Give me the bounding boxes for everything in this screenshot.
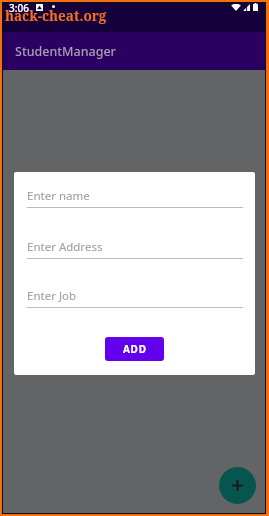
staticText: ADD — [123, 342, 147, 356]
staticText: hack-cheat.org — [5, 7, 107, 25]
staticText: Enter name — [27, 188, 90, 204]
staticText: Enter Job — [27, 288, 77, 304]
button[interactable]: ADD — [105, 337, 164, 361]
button[interactable]: Add student — [219, 467, 256, 504]
staticText: 3:06 — [9, 1, 29, 15]
staticText: Enter Address — [27, 239, 103, 255]
staticText: StudentManager — [15, 43, 116, 60]
